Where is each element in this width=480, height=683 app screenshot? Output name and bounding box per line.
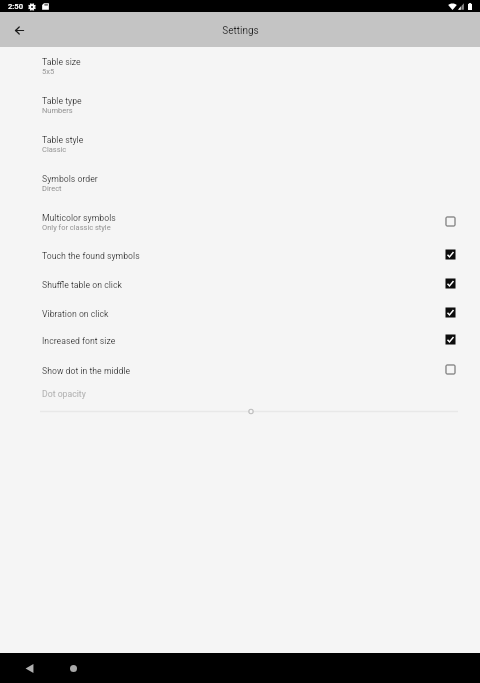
staticText: Numbers	[42, 106, 73, 115]
staticText: Symbols order	[42, 174, 98, 184]
button[interactable]: Shuffle table on click	[0, 271, 480, 300]
staticText: 2:50	[8, 2, 23, 11]
button[interactable]: Dot opacity	[0, 385, 480, 418]
staticText: Classic	[42, 145, 67, 154]
button[interactable]: Table size	[0, 47, 480, 86]
staticText: Dot opacity	[42, 389, 86, 399]
button[interactable]: Multicolor symbols	[0, 203, 480, 242]
button[interactable]: Vibration on click	[0, 300, 480, 329]
staticText: Vibration on click	[42, 309, 445, 319]
button[interactable]: Back	[6, 17, 32, 43]
staticText: Settings	[222, 25, 259, 37]
button[interactable]: Increased font size	[0, 327, 480, 356]
staticText: Touch the found symbols	[42, 251, 445, 261]
staticText: Multicolor symbols	[42, 213, 116, 223]
button[interactable]: Home	[61, 656, 85, 680]
button[interactable]: Back	[17, 656, 41, 680]
staticText: Shuffle table on click	[42, 280, 445, 290]
staticText: Table type	[42, 96, 82, 106]
button[interactable]: Touch the found symbols	[0, 242, 480, 271]
button[interactable]: Table type	[0, 86, 480, 125]
staticText: Increased font size	[42, 336, 445, 346]
staticText: Table style	[42, 135, 84, 145]
button[interactable]: Table style	[0, 125, 480, 164]
staticText: Direct	[42, 184, 62, 193]
staticText: Table size	[42, 57, 81, 67]
button[interactable]: Symbols order	[0, 164, 480, 203]
staticText: Show dot in the middle	[42, 366, 445, 376]
button[interactable]: Show dot in the middle	[0, 357, 480, 386]
staticText: 5x5	[42, 67, 55, 76]
staticText: Only for classic style	[42, 223, 111, 232]
